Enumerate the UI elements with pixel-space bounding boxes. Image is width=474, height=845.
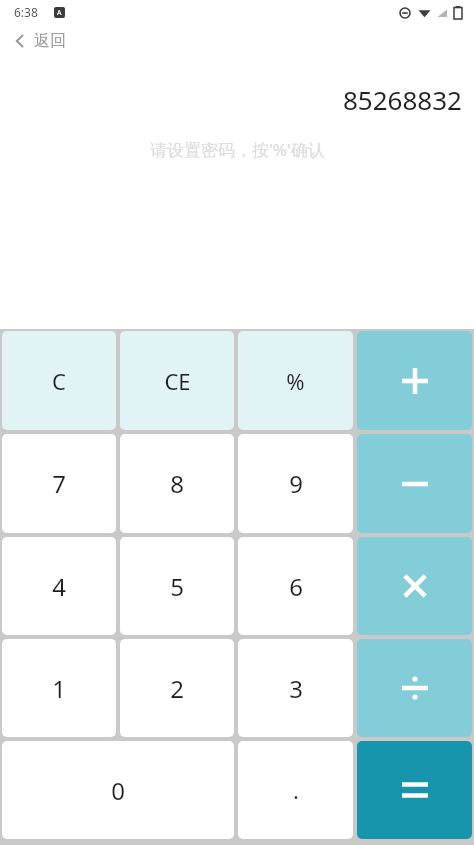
button[interactable]: C bbox=[2, 331, 116, 430]
button[interactable]: 0 bbox=[2, 741, 234, 839]
staticText: 2 bbox=[170, 672, 184, 705]
button[interactable]: 7 bbox=[2, 434, 116, 533]
button[interactable]: 4 bbox=[2, 537, 116, 635]
button[interactable]: 2 bbox=[120, 639, 234, 737]
button[interactable]: Equals bbox=[357, 741, 472, 839]
staticText: 3 bbox=[289, 672, 303, 705]
button[interactable]: 9 bbox=[238, 434, 353, 533]
button[interactable]: Multiply bbox=[357, 537, 472, 635]
staticText: . bbox=[293, 775, 299, 805]
staticText: 返回 bbox=[34, 31, 66, 51]
staticText: 6:38 bbox=[14, 4, 38, 20]
staticText: 85268832 bbox=[343, 82, 462, 117]
button[interactable]: CE bbox=[120, 331, 234, 430]
button[interactable]: 8 bbox=[120, 434, 234, 533]
button[interactable]: 6 bbox=[238, 537, 353, 635]
staticText: 4 bbox=[52, 570, 66, 603]
staticText: A bbox=[57, 8, 62, 18]
staticText: C bbox=[52, 366, 66, 396]
button[interactable]: % bbox=[238, 331, 353, 430]
staticText: 9 bbox=[289, 467, 303, 500]
staticText: 7 bbox=[52, 467, 66, 500]
button[interactable]: 1 bbox=[2, 639, 116, 737]
staticText: 0 bbox=[111, 774, 125, 807]
staticText: % bbox=[286, 366, 305, 396]
button[interactable]: 5 bbox=[120, 537, 234, 635]
staticText: 5 bbox=[170, 570, 184, 603]
staticText: 1 bbox=[52, 672, 66, 705]
button[interactable]: Plus bbox=[357, 331, 472, 430]
button[interactable]: 3 bbox=[238, 639, 353, 737]
button[interactable]: . bbox=[238, 741, 353, 839]
staticText: 请设置密码，按'%'确认 bbox=[150, 138, 325, 161]
staticText: CE bbox=[164, 366, 191, 396]
button[interactable]: Minus bbox=[357, 434, 472, 533]
button[interactable]: 返回 bbox=[0, 24, 66, 58]
button[interactable]: Divide bbox=[357, 639, 472, 737]
staticText: 8 bbox=[170, 467, 184, 500]
staticText: 6 bbox=[289, 570, 303, 603]
